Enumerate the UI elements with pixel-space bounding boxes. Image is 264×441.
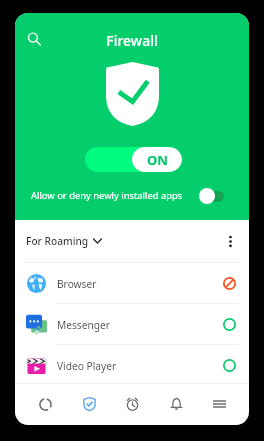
button[interactable]: Allow or deny newly installed apps <box>15 183 249 208</box>
button[interactable]: Firewall <box>76 387 102 421</box>
button[interactable]: Menu <box>206 387 232 421</box>
button[interactable]: Search <box>21 26 47 52</box>
staticText: Firewall <box>15 31 249 50</box>
staticText: ON <box>147 151 168 169</box>
button[interactable]: Messenger <box>15 304 249 345</box>
staticText: Messenger <box>57 318 111 332</box>
button[interactable]: Video Player <box>15 345 249 386</box>
staticText: Browser <box>57 277 97 291</box>
staticText: Video Player <box>57 359 117 373</box>
button[interactable]: ON <box>85 147 182 172</box>
button[interactable]: More options <box>217 228 243 254</box>
button[interactable]: Browser <box>15 263 249 304</box>
button[interactable]: Refresh <box>32 387 58 421</box>
staticText: Allow or deny newly installed apps <box>31 189 183 202</box>
button[interactable]: For Roaming <box>24 228 104 254</box>
staticText: For Roaming <box>26 234 89 248</box>
button[interactable]: Alarm <box>119 387 145 421</box>
button[interactable]: Notifications <box>163 387 189 421</box>
